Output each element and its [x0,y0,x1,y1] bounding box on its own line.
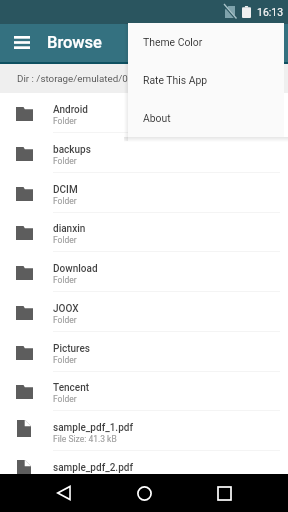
staticText: File Size: 41.3 kB [53,434,117,444]
button[interactable]: Recent apps [202,474,246,512]
staticText: Folder [53,355,77,365]
staticText: dianxin [53,223,86,235]
staticText: Download [53,263,98,275]
staticText: Dir : /storage/emulated/0 [17,73,128,84]
staticText: Folder [53,315,77,325]
staticText: Android [53,104,88,116]
staticText: Tencent [53,382,90,394]
staticText: About [143,112,171,124]
staticText: sample_pdf_2.pdf [53,462,133,474]
staticText: Browse [47,33,102,52]
button[interactable]: Dir : /storage/emulated/0 [0,64,288,93]
staticText: 16:13 [257,6,284,18]
staticText: Theme Color [143,36,203,48]
button[interactable]: Theme Color [128,23,284,61]
staticText: Pictures [53,343,91,355]
staticText: Folder [53,196,77,206]
button[interactable]: sample_pdf_2.pdf [0,451,288,491]
button[interactable]: About [128,99,284,137]
button[interactable]: dianxin [0,212,288,252]
staticText: JOOX [53,303,79,315]
button[interactable]: sample_pdf_1.pdf [0,411,288,451]
staticText: DCIM [53,184,78,196]
button[interactable]: Download [0,252,288,292]
staticText: Folder [53,394,77,404]
button[interactable]: JOOX [0,292,288,332]
button[interactable]: Tencent [0,371,288,411]
button[interactable]: Open navigation drawer [6,28,38,60]
staticText: Folder [53,116,77,126]
button[interactable]: Rate This App [128,61,284,99]
button[interactable]: Pictures [0,332,288,372]
staticText: backups [53,144,91,156]
staticText: Folder [53,235,77,245]
button[interactable]: backups [0,133,288,173]
staticText: Folder [53,156,77,166]
button[interactable]: Back [42,474,86,512]
button[interactable]: Android [0,93,288,133]
button[interactable]: Home [122,474,166,512]
staticText: Rate This App [143,74,208,86]
staticText: sample_pdf_1.pdf [53,422,133,434]
staticText: Folder [53,275,77,285]
button[interactable]: DCIM [0,173,288,213]
